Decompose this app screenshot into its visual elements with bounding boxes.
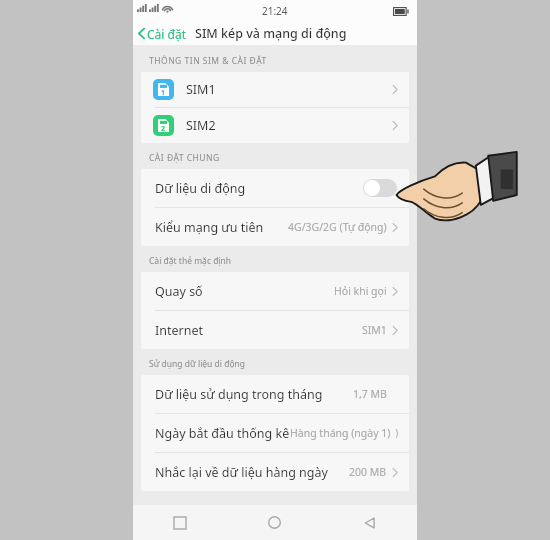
- staticText: Quay số: [155, 283, 203, 300]
- staticText: Nhắc lại về dữ liệu hàng ngày: [155, 464, 328, 481]
- staticText: 21:24: [262, 4, 288, 18]
- button[interactable]: Recents: [133, 505, 227, 540]
- staticText: Sử dụng dữ liệu di động: [149, 358, 246, 370]
- button[interactable]: Back: [322, 505, 417, 540]
- staticText: 200 MB: [349, 465, 387, 479]
- staticText: Cài đặt thẻ mặc định: [149, 255, 232, 267]
- staticText: Cài đặt: [147, 26, 187, 42]
- staticText: 4G/3G/2G (Tự động): [288, 220, 387, 234]
- staticText: Kiểu mạng ưu tiên: [155, 219, 264, 236]
- staticText: Internet: [155, 322, 203, 339]
- button[interactable]: 1: [141, 72, 409, 107]
- staticText: Dữ liệu sử dụng trong tháng: [155, 386, 323, 403]
- staticText: SIM1: [186, 81, 216, 98]
- staticText: Hàng tháng (ngày 1): [290, 426, 391, 440]
- staticText: SIM1: [362, 323, 387, 337]
- button[interactable]: Home: [227, 505, 322, 540]
- staticText: THÔNG TIN SIM & CÀI ĐẶT: [149, 55, 267, 67]
- staticText: SIM2: [186, 117, 216, 134]
- staticText: 1: [161, 88, 166, 98]
- button[interactable]: Kiểu mạng ưu tiên: [141, 208, 409, 246]
- staticText: CÀI ĐẶT CHUNG: [149, 152, 220, 164]
- staticText: 2: [161, 124, 166, 134]
- staticText: Hỏi khi gọi: [334, 284, 387, 298]
- button[interactable]: Cài đặt: [133, 22, 192, 45]
- button[interactable]: Quay số: [141, 272, 409, 310]
- button[interactable]: 2: [141, 108, 409, 143]
- staticText: SIM kép và mạng di động: [195, 25, 347, 42]
- staticText: Dữ liệu di động: [155, 180, 246, 197]
- staticText: 1,7 MB: [353, 387, 387, 401]
- button[interactable]: Dữ liệu sử dụng trong tháng: [141, 375, 409, 413]
- button[interactable]: Internet: [141, 311, 409, 349]
- button[interactable]: Dữ liệu di động: [141, 169, 409, 207]
- button[interactable]: Nhắc lại về dữ liệu hàng ngày: [141, 453, 409, 491]
- button[interactable]: Ngày bắt đầu thống kê: [141, 414, 409, 452]
- staticText: Ngày bắt đầu thống kê: [155, 425, 290, 442]
